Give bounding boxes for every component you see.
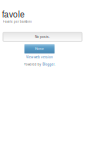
staticText: Blogger — [42, 63, 54, 66]
staticText: Powered by — [23, 63, 42, 66]
staticText: No posts. — [35, 35, 50, 39]
staticText: Home — [35, 47, 44, 51]
staticText: Favole per bambini — [3, 20, 32, 23]
button[interactable]: Home — [24, 44, 54, 53]
staticText: favole — [2, 10, 25, 19]
staticText: . — [54, 63, 55, 66]
button[interactable]: View web version — [26, 53, 53, 60]
staticText: View web version — [26, 55, 53, 59]
button[interactable]: Blogger — [42, 63, 54, 66]
